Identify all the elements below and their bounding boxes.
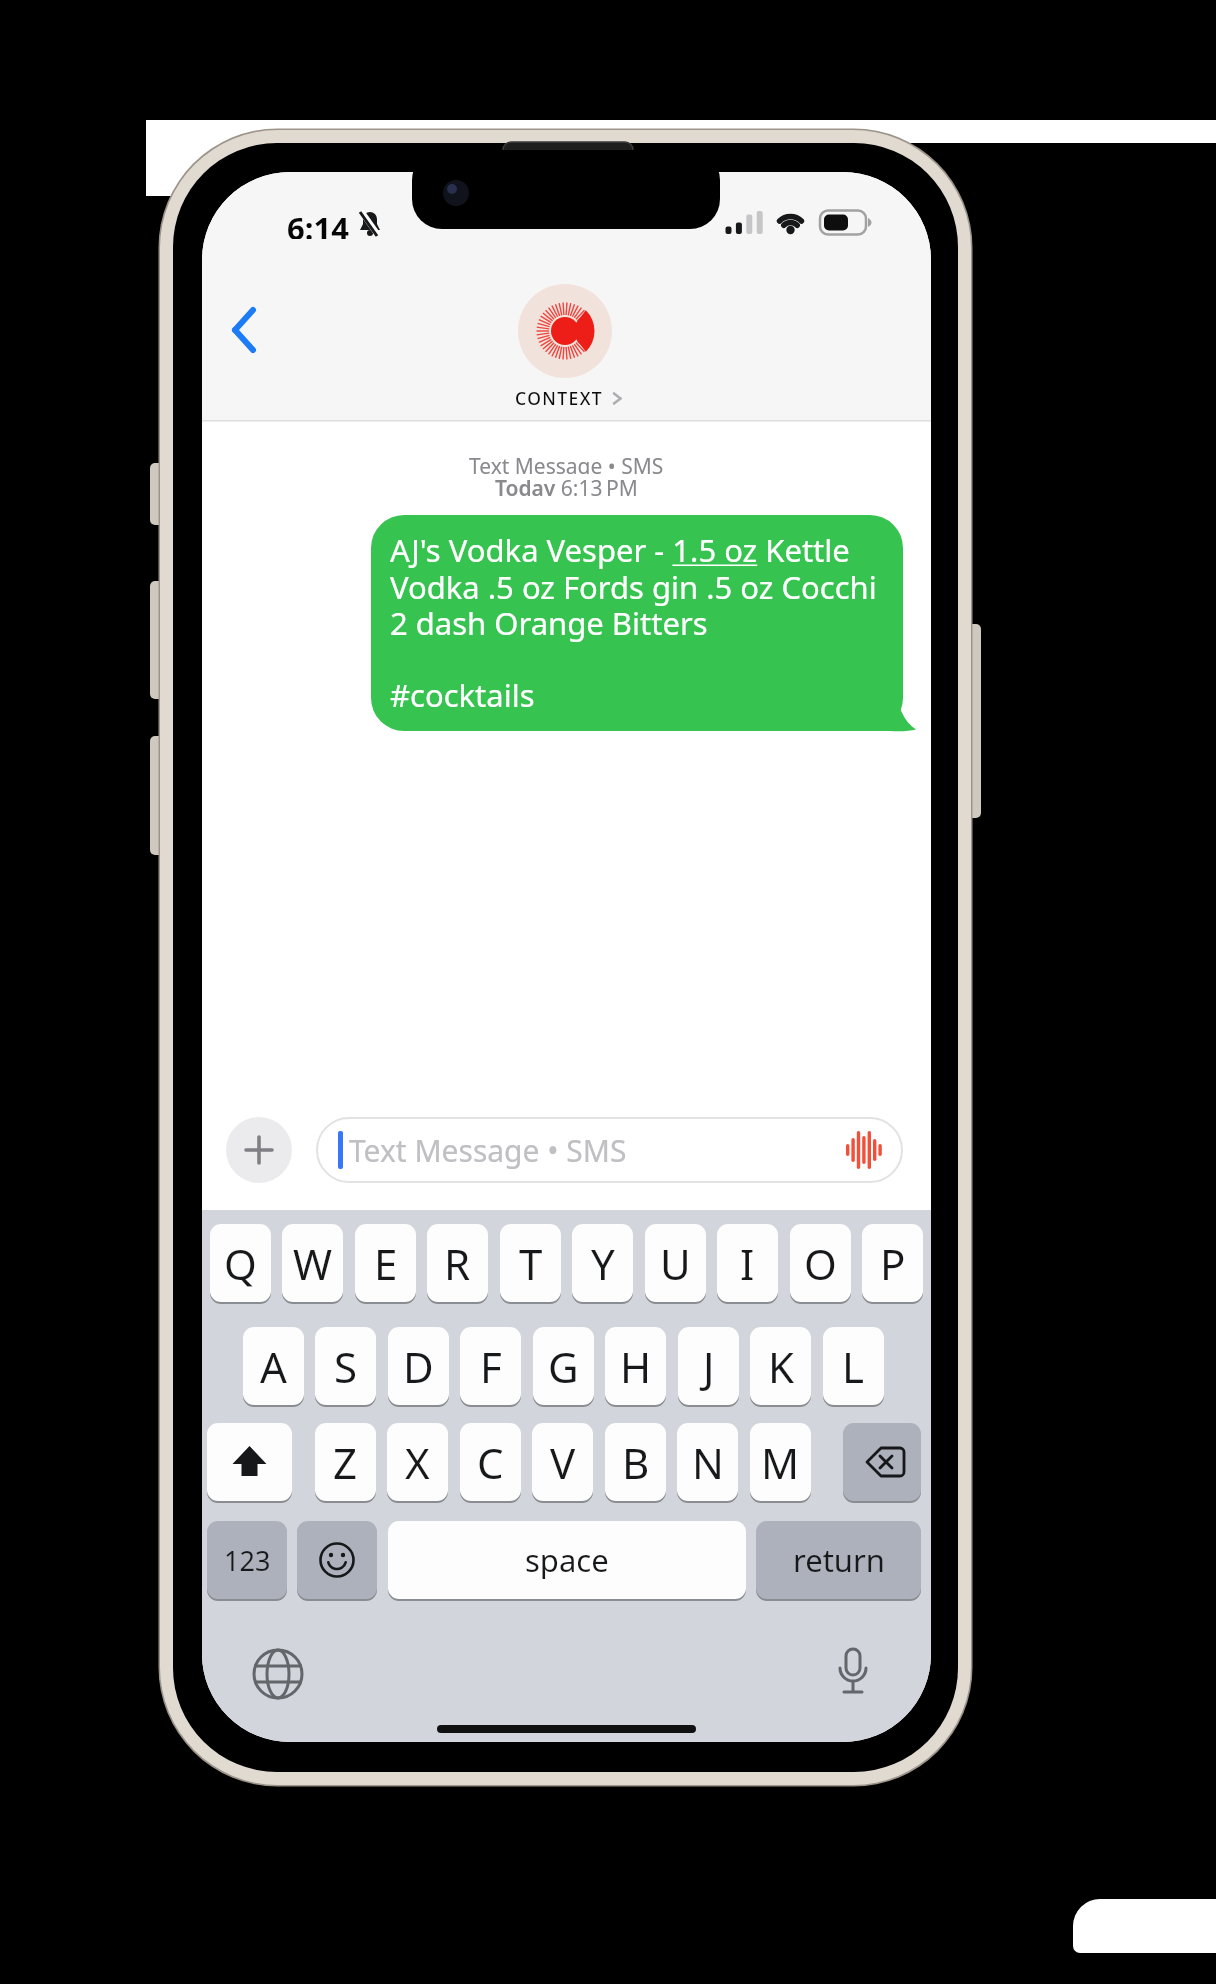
button[interactable]: W bbox=[282, 1224, 343, 1302]
button[interactable]: T bbox=[500, 1224, 561, 1302]
button[interactable]: F bbox=[460, 1327, 521, 1405]
button[interactable] bbox=[297, 1521, 377, 1599]
button[interactable]: B bbox=[605, 1423, 666, 1501]
button[interactable]: E bbox=[355, 1224, 416, 1302]
button[interactable]: return bbox=[756, 1521, 921, 1599]
button[interactable]: O bbox=[790, 1224, 851, 1302]
staticText: M bbox=[761, 1434, 800, 1491]
staticText: P bbox=[880, 1235, 906, 1292]
button[interactable]: A bbox=[243, 1327, 304, 1405]
staticText: J bbox=[703, 1338, 715, 1395]
button[interactable] bbox=[248, 1644, 308, 1704]
staticText: space bbox=[525, 1539, 609, 1581]
button[interactable]: G bbox=[533, 1327, 594, 1405]
button[interactable] bbox=[226, 1117, 292, 1183]
staticText: I bbox=[740, 1235, 755, 1292]
button[interactable] bbox=[222, 298, 270, 362]
button[interactable]: I bbox=[717, 1224, 778, 1302]
button[interactable]: J bbox=[678, 1327, 739, 1405]
button[interactable]: K bbox=[750, 1327, 811, 1405]
staticText: X bbox=[405, 1434, 430, 1491]
button[interactable]: S bbox=[315, 1327, 376, 1405]
staticText: A bbox=[260, 1338, 287, 1395]
staticText: W bbox=[293, 1235, 333, 1292]
button[interactable]: Y bbox=[572, 1224, 633, 1302]
staticText: E bbox=[374, 1235, 398, 1292]
staticText: H bbox=[620, 1338, 652, 1395]
staticText: L bbox=[842, 1338, 865, 1395]
staticText: Text Message • SMS bbox=[349, 1130, 627, 1171]
button[interactable] bbox=[207, 1423, 292, 1501]
button[interactable]: AJ's Vodka Vesper - 1.5 oz Kettle Vodka … bbox=[371, 515, 903, 731]
button[interactable]: U bbox=[645, 1224, 706, 1302]
button[interactable]: C bbox=[460, 1423, 521, 1501]
staticText: 123 bbox=[224, 1542, 271, 1579]
staticText: R bbox=[444, 1235, 471, 1292]
staticText: 6:14 bbox=[287, 207, 349, 239]
staticText: Q bbox=[224, 1235, 257, 1292]
staticText: V bbox=[550, 1434, 576, 1491]
staticText: Z bbox=[333, 1434, 358, 1491]
staticText: O bbox=[804, 1235, 837, 1292]
staticText: S bbox=[334, 1338, 358, 1395]
button[interactable]: 123 bbox=[207, 1521, 287, 1599]
staticText: T bbox=[519, 1235, 543, 1292]
button[interactable]: L bbox=[823, 1327, 884, 1405]
staticText: Y bbox=[591, 1235, 615, 1292]
button[interactable]: M bbox=[750, 1423, 811, 1501]
staticText: AJ's Vodka Vesper - 1.5 oz Kettle Vodka … bbox=[390, 529, 877, 716]
staticText: K bbox=[768, 1338, 794, 1395]
button[interactable]: D bbox=[388, 1327, 449, 1405]
button[interactable]: V bbox=[532, 1423, 593, 1501]
button[interactable]: CONTEXT bbox=[459, 385, 659, 411]
button[interactable]: R bbox=[427, 1224, 488, 1302]
button[interactable] bbox=[823, 1634, 883, 1694]
staticText: Today 6:13 PM bbox=[495, 474, 638, 496]
button[interactable]: space bbox=[388, 1521, 746, 1599]
button[interactable] bbox=[843, 1423, 921, 1501]
button[interactable]: H bbox=[605, 1327, 666, 1405]
staticText: N bbox=[692, 1434, 724, 1491]
button[interactable]: X bbox=[387, 1423, 448, 1501]
button[interactable]: Q bbox=[210, 1224, 271, 1302]
staticText: U bbox=[660, 1235, 691, 1292]
staticText: C bbox=[477, 1434, 504, 1491]
button[interactable]: N bbox=[677, 1423, 738, 1501]
staticText: B bbox=[622, 1434, 650, 1491]
staticText: return bbox=[793, 1539, 885, 1581]
staticText: Text Message • SMS bbox=[469, 452, 664, 474]
button[interactable]: Z bbox=[315, 1423, 376, 1501]
staticText: F bbox=[480, 1338, 502, 1395]
staticText: CONTEXT bbox=[515, 386, 603, 410]
staticText: D bbox=[403, 1338, 434, 1395]
button[interactable]: P bbox=[862, 1224, 923, 1302]
staticText: G bbox=[548, 1338, 579, 1395]
button[interactable]: Text Message • SMS bbox=[316, 1117, 903, 1183]
